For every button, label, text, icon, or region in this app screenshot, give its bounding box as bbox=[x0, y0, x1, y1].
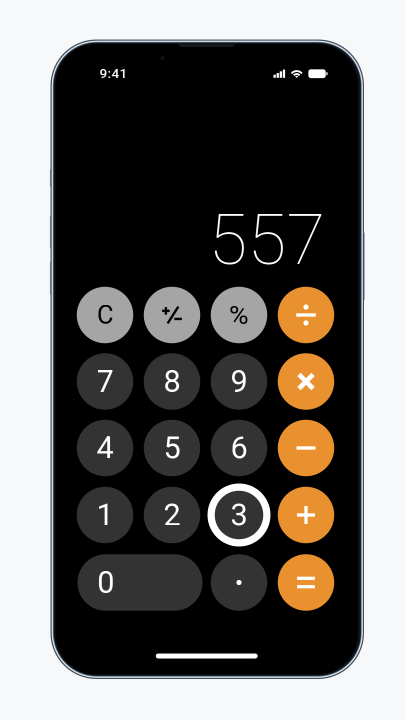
staticText: 2 bbox=[163, 497, 180, 533]
staticText: 8 bbox=[163, 363, 180, 399]
button[interactable]: 6 bbox=[211, 420, 267, 476]
button[interactable]: 0 bbox=[77, 554, 202, 611]
button[interactable]: 5 bbox=[144, 420, 200, 476]
staticText: 7 bbox=[96, 363, 113, 399]
button[interactable]: Equals bbox=[278, 554, 334, 611]
staticText: 1 bbox=[96, 497, 113, 533]
button[interactable]: 8 bbox=[144, 353, 200, 410]
button[interactable]: Multiply bbox=[278, 353, 334, 410]
button[interactable]: Subtract bbox=[278, 420, 334, 476]
staticText: 6 bbox=[230, 430, 247, 466]
staticText: C bbox=[97, 300, 113, 330]
staticText: 3 bbox=[230, 497, 247, 533]
button[interactable]: Divide bbox=[278, 287, 334, 343]
button[interactable]: 1 bbox=[77, 487, 133, 543]
button[interactable]: 4 bbox=[77, 420, 133, 476]
staticText: 4 bbox=[96, 430, 113, 466]
staticText: 9 bbox=[230, 363, 247, 399]
staticText: 9:41 bbox=[99, 65, 127, 81]
staticText: % bbox=[229, 299, 249, 331]
button[interactable]: C bbox=[77, 287, 133, 343]
button[interactable]: Decimal point bbox=[211, 554, 267, 611]
staticText: 0 bbox=[97, 564, 114, 600]
button[interactable]: 9 bbox=[211, 353, 267, 410]
button[interactable]: Add bbox=[278, 487, 334, 543]
staticText: 5 bbox=[163, 430, 180, 466]
button[interactable]: 2 bbox=[144, 487, 200, 543]
button[interactable]: Plus minus bbox=[144, 287, 200, 343]
button[interactable]: 7 bbox=[77, 353, 133, 410]
button[interactable]: % bbox=[211, 287, 267, 343]
button[interactable]: 3 bbox=[207, 483, 270, 546]
staticText: 557 bbox=[208, 198, 325, 281]
